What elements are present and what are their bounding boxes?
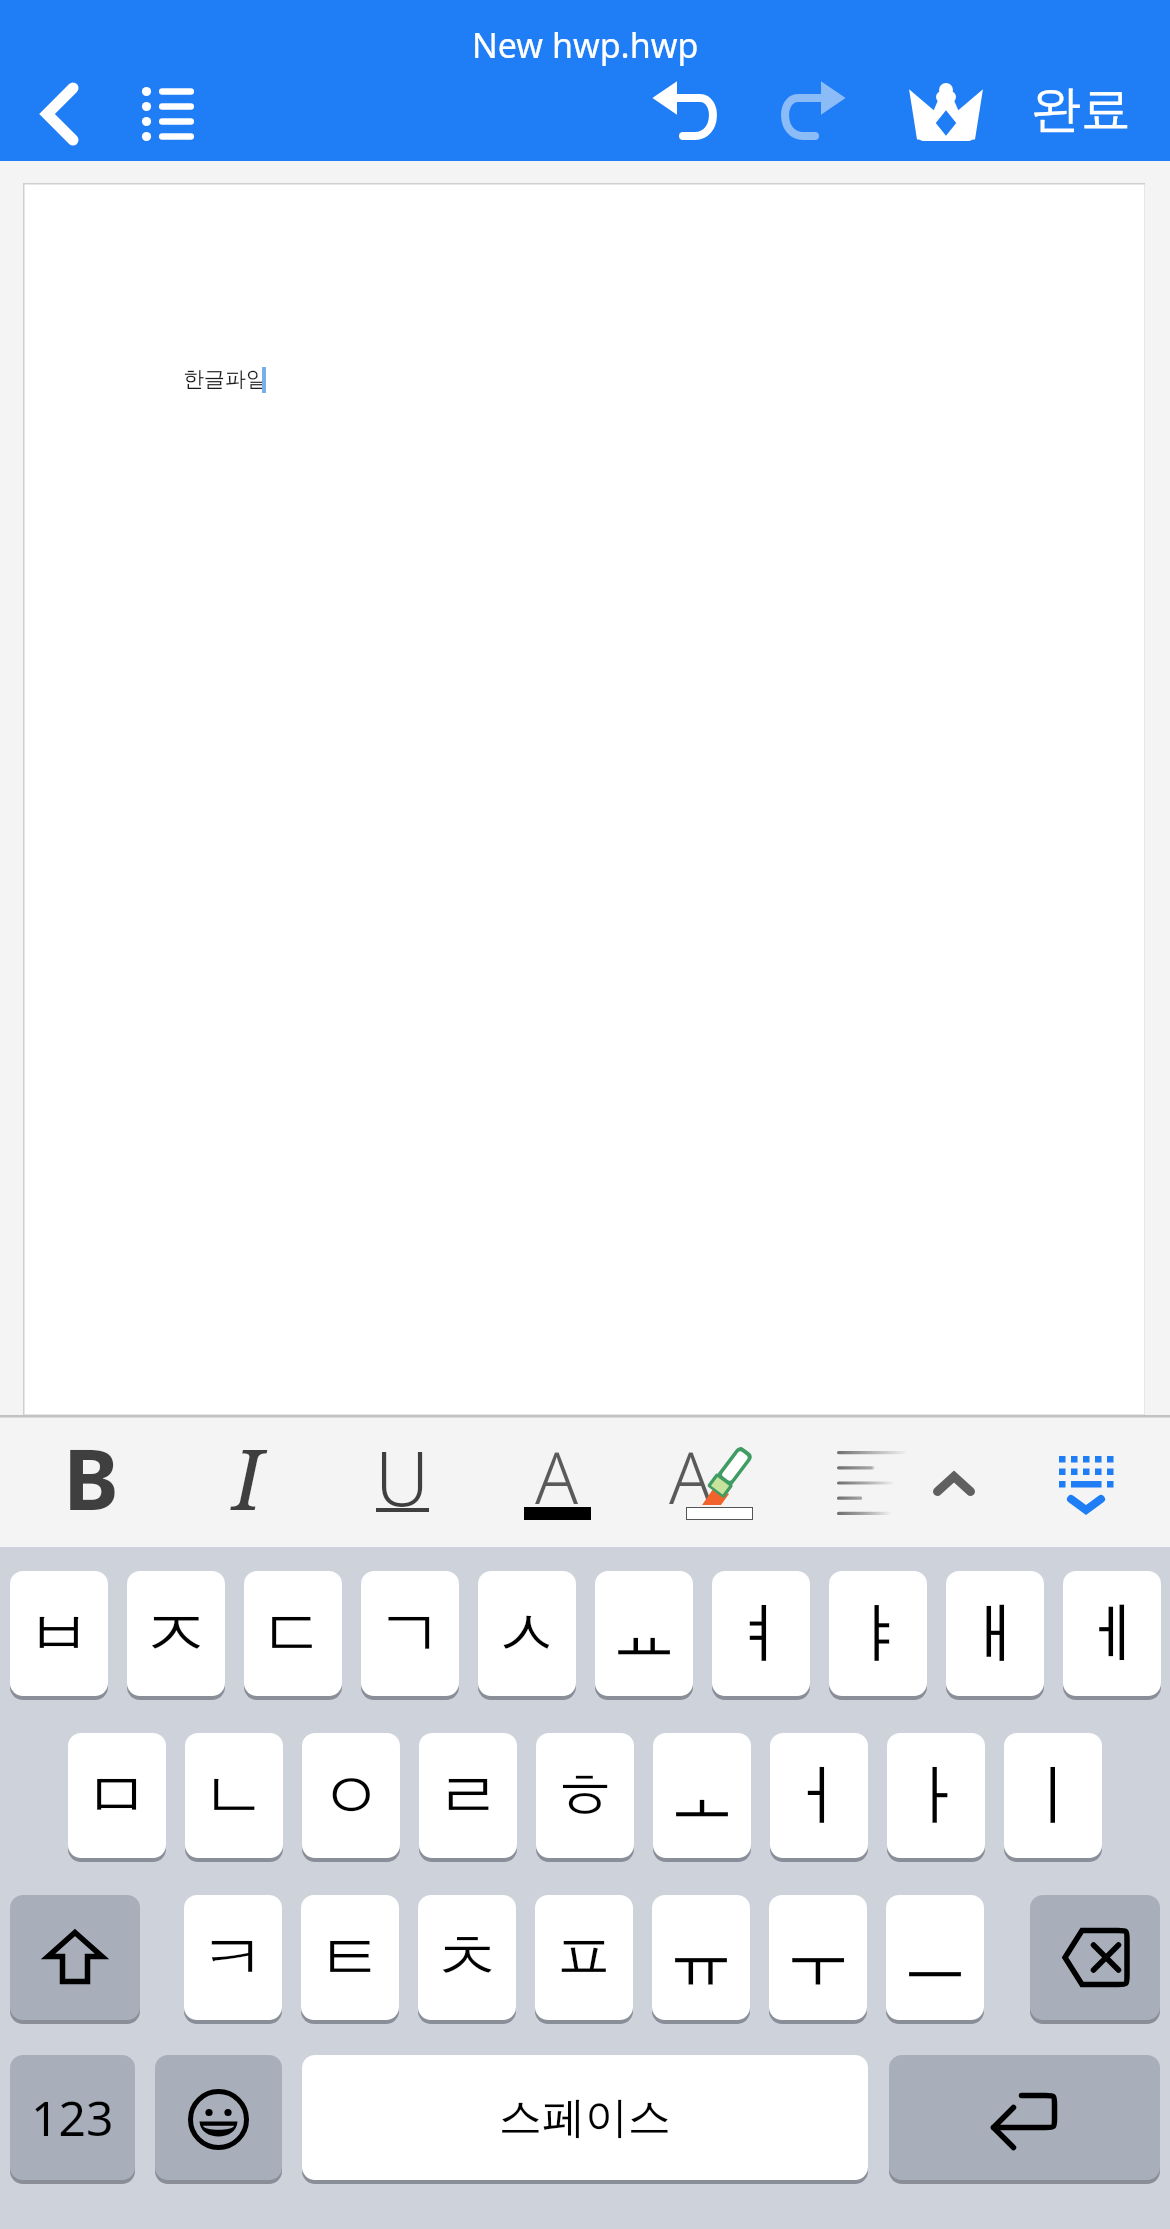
staticText: ㅗ [669, 1754, 735, 1837]
button[interactable]: ㅇ [302, 1733, 400, 1862]
button[interactable]: ㅐ [946, 1571, 1044, 1700]
button[interactable]: Undo [634, 62, 738, 162]
button[interactable]: Return [889, 2055, 1160, 2184]
button[interactable]: Outline [118, 66, 218, 162]
staticText: ㅑ [845, 1592, 911, 1675]
staticText: ㅏ [903, 1754, 969, 1837]
staticText: ㅋ [200, 1916, 266, 1999]
staticText: ㅕ [728, 1592, 794, 1675]
staticText: ㅜ [785, 1916, 851, 1999]
button[interactable]: ㅠ [652, 1895, 750, 2024]
staticText: 스페이스 [499, 2091, 671, 2145]
staticText: A [535, 1428, 579, 1525]
staticText: ㅅ [494, 1592, 560, 1675]
button[interactable]: 완료 [1016, 59, 1146, 159]
button[interactable]: Underline [338, 1415, 466, 1547]
button[interactable]: 123 [10, 2055, 135, 2184]
button[interactable]: Alignment [820, 1437, 910, 1517]
button[interactable]: ㅋ [184, 1895, 282, 2024]
button[interactable]: ㅓ [770, 1733, 868, 1862]
button[interactable]: ㄴ [185, 1733, 283, 1862]
button[interactable]: Highlight [649, 1415, 777, 1547]
button[interactable]: ㅌ [301, 1895, 399, 2024]
button[interactable]: Emoji [155, 2055, 282, 2184]
staticText: 한글파일 [183, 366, 267, 392]
button[interactable]: More [914, 1455, 994, 1515]
staticText: ㅎ [552, 1754, 618, 1837]
staticText: ㅓ [786, 1754, 852, 1837]
button[interactable]: ㅑ [829, 1571, 927, 1700]
staticText: ㅈ [143, 1592, 209, 1675]
staticText: I [232, 1420, 263, 1534]
button[interactable]: ㅜ [769, 1895, 867, 2024]
staticText: ㅐ [962, 1592, 1028, 1675]
staticText: A [669, 1428, 713, 1525]
button[interactable]: Shift [10, 1895, 140, 2024]
staticText: ㅠ [668, 1916, 734, 1999]
button[interactable]: ㅎ [536, 1733, 634, 1862]
staticText: ㅇ [318, 1754, 384, 1837]
staticText: ㅊ [434, 1916, 500, 1999]
staticText: ㅡ [902, 1916, 968, 1999]
button[interactable]: ㅈ [127, 1571, 225, 1700]
staticText: ㅛ [611, 1592, 677, 1675]
staticText: ㄷ [260, 1592, 326, 1675]
button[interactable]: ㄹ [419, 1733, 517, 1862]
staticText: ㅣ [1020, 1754, 1086, 1837]
button[interactable]: Redo [760, 62, 864, 162]
staticText: ㄹ [435, 1754, 501, 1837]
button[interactable]: Backspace [1030, 1895, 1160, 2024]
button[interactable]: ㅂ [10, 1571, 108, 1700]
staticText: ㅌ [317, 1916, 383, 1999]
button[interactable]: ㅔ [1063, 1571, 1161, 1700]
button[interactable]: ㅕ [712, 1571, 810, 1700]
staticText: ㅁ [84, 1754, 150, 1837]
button[interactable]: Back [10, 66, 110, 162]
staticText: ㅔ [1079, 1592, 1145, 1675]
button[interactable]: ㅏ [887, 1733, 985, 1862]
staticText: B [63, 1420, 119, 1534]
staticText: ㅂ [26, 1592, 92, 1675]
button[interactable]: ㅗ [653, 1733, 751, 1862]
staticText: 완료 [1031, 78, 1131, 141]
button[interactable]: ㄱ [361, 1571, 459, 1700]
button[interactable]: ㅁ [68, 1733, 166, 1862]
staticText: New hwp.hwp [472, 22, 699, 68]
staticText: ㄴ [201, 1754, 267, 1837]
button[interactable]: 스페이스 [302, 2055, 868, 2184]
button[interactable]: ㅡ [886, 1895, 984, 2024]
staticText: ㄱ [377, 1592, 443, 1675]
staticText: ㅍ [551, 1916, 617, 1999]
button[interactable]: Hide keyboard [1030, 1435, 1140, 1545]
button[interactable]: ㅊ [418, 1895, 516, 2024]
button[interactable]: ㅣ [1004, 1733, 1102, 1862]
button[interactable]: Premium [893, 62, 999, 162]
button[interactable]: ㅅ [478, 1571, 576, 1700]
staticText: 123 [31, 2085, 114, 2150]
button[interactable]: Italic [183, 1415, 311, 1547]
button[interactable]: ㅛ [595, 1571, 693, 1700]
button[interactable]: Bold [27, 1415, 155, 1547]
staticText: U [375, 1426, 430, 1528]
button[interactable]: ㅍ [535, 1895, 633, 2024]
button[interactable]: ㄷ [244, 1571, 342, 1700]
button[interactable]: Text colour [493, 1415, 621, 1547]
